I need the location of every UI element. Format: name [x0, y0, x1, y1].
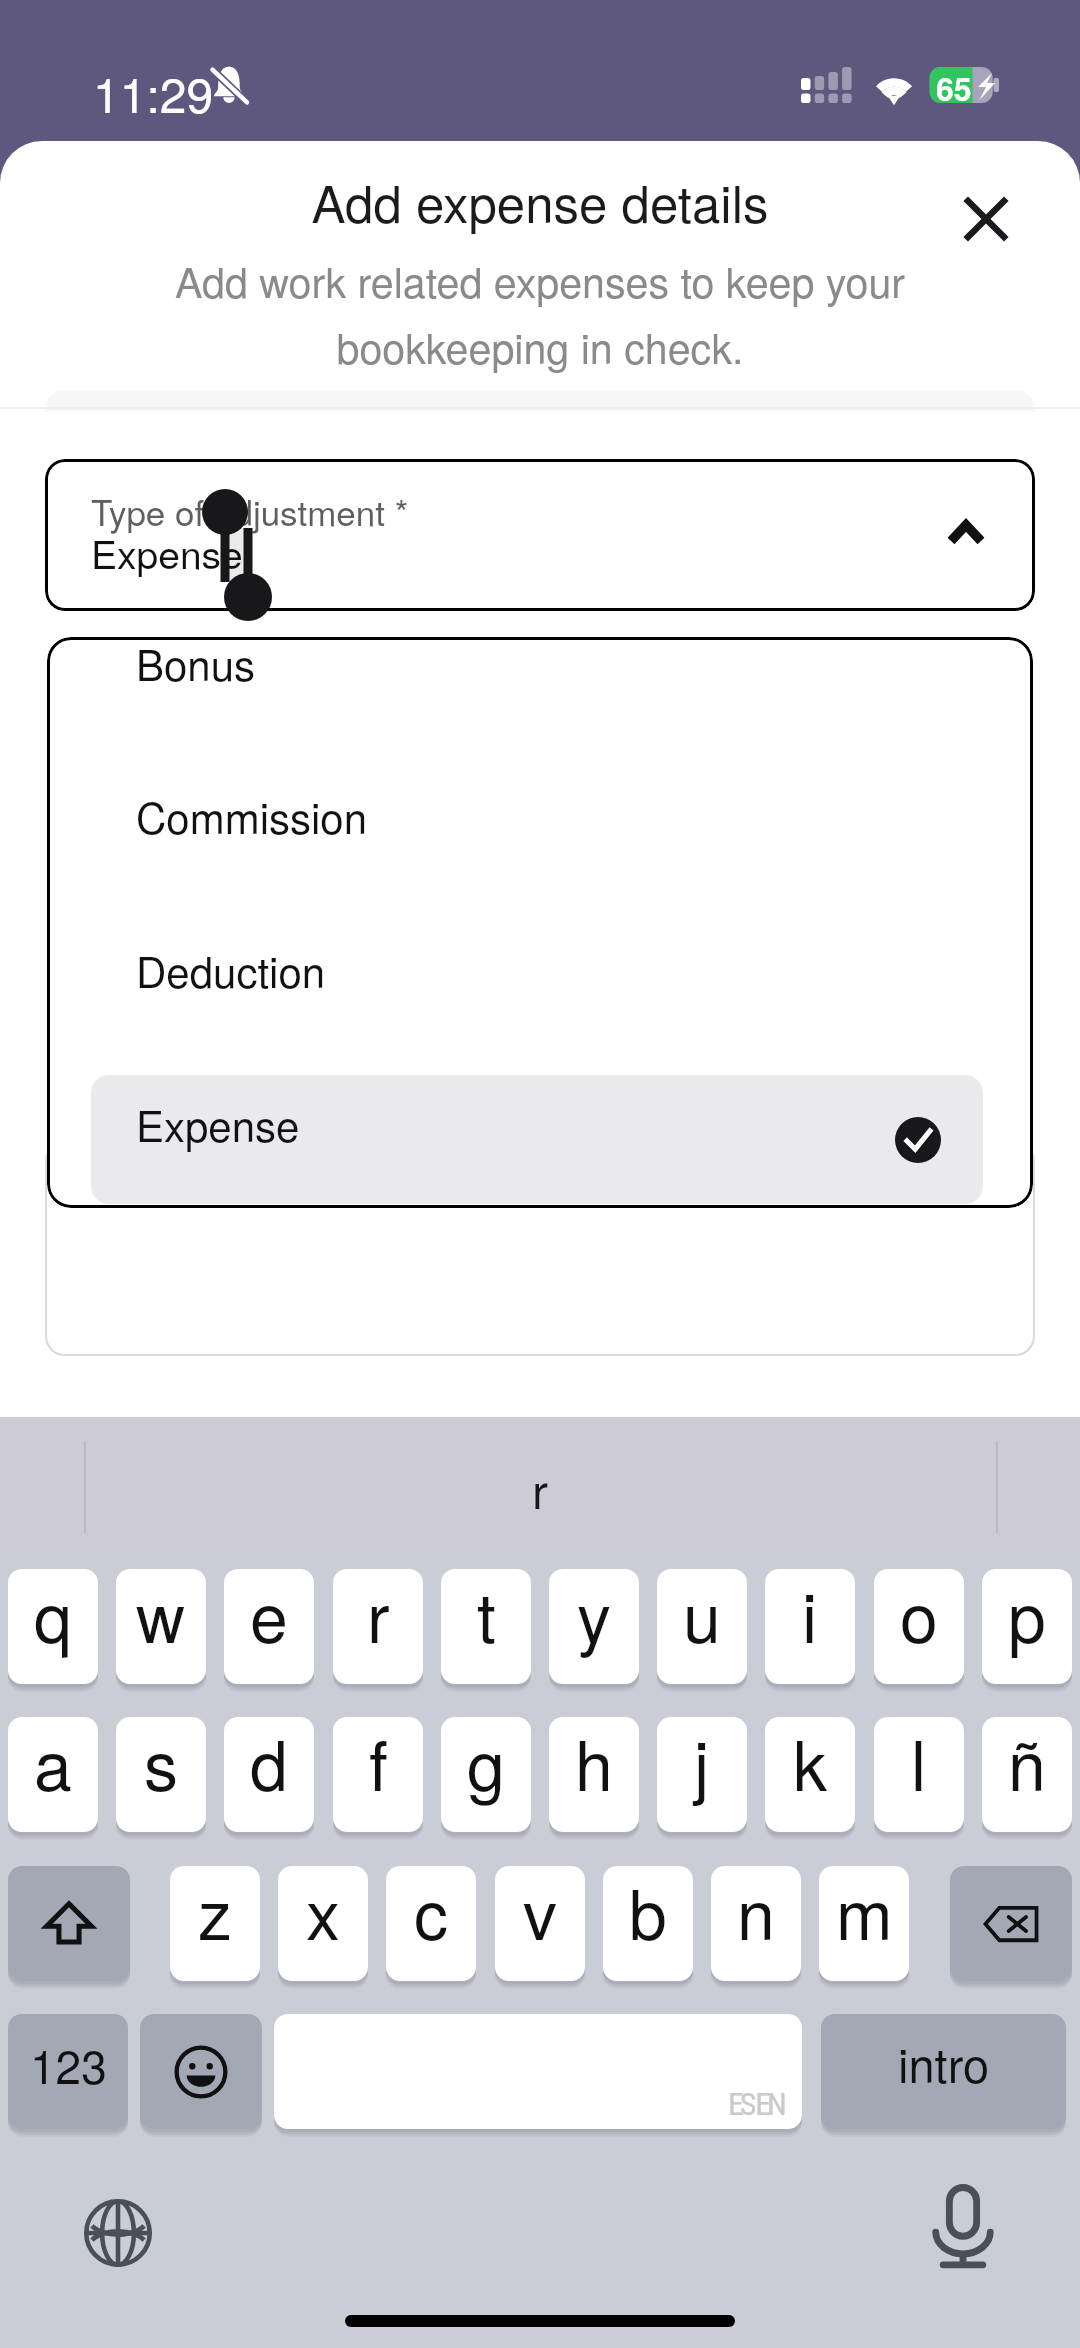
- staticText: ñ: [1008, 1717, 1046, 1810]
- button[interactable]: Shift: [8, 1866, 130, 1981]
- staticText: g: [467, 1717, 505, 1810]
- button[interactable]: r: [333, 1569, 423, 1684]
- staticText: 65: [936, 65, 972, 111]
- staticText: r: [0, 1454, 1080, 1523]
- staticText: y: [577, 1569, 612, 1662]
- button[interactable]: d: [224, 1717, 314, 1832]
- staticText: q: [34, 1569, 72, 1662]
- button[interactable]: g: [441, 1717, 531, 1832]
- staticText: Type of adjustment *: [91, 486, 409, 536]
- button[interactable]: v: [495, 1866, 585, 1981]
- button[interactable]: Expense: [47, 1075, 1033, 1204]
- button[interactable]: w: [116, 1569, 206, 1684]
- staticText: l: [911, 1717, 927, 1810]
- staticText: Expense: [136, 1094, 300, 1154]
- staticText: m: [836, 1866, 893, 1959]
- staticText: x: [306, 1866, 341, 1959]
- staticText: 123: [30, 2031, 107, 2097]
- button[interactable]: Type of adjustment *: [45, 459, 1035, 611]
- staticText: Deduction: [136, 940, 326, 1000]
- button[interactable]: p: [982, 1569, 1072, 1684]
- button[interactable]: Dictation: [915, 2179, 1011, 2275]
- button[interactable]: Commission: [47, 767, 1033, 896]
- staticText: d: [250, 1717, 288, 1810]
- staticText: ES EN: [728, 2085, 783, 2123]
- button[interactable]: x: [278, 1866, 368, 1981]
- staticText: Add expense details: [0, 164, 1080, 237]
- staticText: intro: [898, 2029, 990, 2096]
- staticText: v: [523, 1866, 558, 1959]
- button[interactable]: b: [603, 1866, 693, 1981]
- staticText: Expense: [91, 524, 243, 580]
- button[interactable]: o: [874, 1569, 964, 1684]
- button[interactable]: c: [386, 1866, 476, 1981]
- button[interactable]: a: [8, 1717, 98, 1832]
- button[interactable]: k: [765, 1717, 855, 1832]
- button[interactable]: j: [657, 1717, 747, 1832]
- button[interactable]: Backspace: [950, 1866, 1072, 1981]
- button[interactable]: n: [711, 1866, 801, 1981]
- staticText: p: [1008, 1569, 1046, 1662]
- staticText: z: [198, 1866, 233, 1959]
- staticText: Add work related expenses to keep your b…: [60, 251, 1020, 376]
- staticText: f: [369, 1717, 388, 1810]
- staticText: a: [34, 1717, 72, 1810]
- button[interactable]: Space: [274, 2014, 802, 2129]
- button[interactable]: Emoji: [140, 2014, 262, 2129]
- staticText: k: [793, 1717, 828, 1810]
- button[interactable]: t: [441, 1569, 531, 1684]
- staticText: o: [900, 1569, 938, 1662]
- staticText: s: [144, 1717, 179, 1810]
- staticText: u: [683, 1569, 721, 1662]
- button[interactable]: ñ: [982, 1717, 1072, 1832]
- staticText: b: [629, 1866, 667, 1959]
- button[interactable]: z: [170, 1866, 260, 1981]
- button[interactable]: i: [765, 1569, 855, 1684]
- button[interactable]: Bonus: [47, 637, 1033, 743]
- staticText: j: [694, 1717, 710, 1810]
- button[interactable]: s: [116, 1717, 206, 1832]
- button[interactable]: Close: [936, 169, 1036, 269]
- button[interactable]: Change language: [70, 2185, 166, 2281]
- button[interactable]: 123: [8, 2014, 128, 2129]
- button[interactable]: intro: [821, 2014, 1066, 2129]
- staticText: e: [250, 1569, 288, 1662]
- staticText: Bonus: [136, 637, 256, 693]
- button[interactable]: q: [8, 1569, 98, 1684]
- staticText: i: [802, 1569, 818, 1662]
- staticText: w: [136, 1569, 186, 1662]
- button[interactable]: l: [874, 1717, 964, 1832]
- staticText: t: [477, 1569, 496, 1662]
- button[interactable]: h: [549, 1717, 639, 1832]
- button[interactable]: m: [819, 1866, 909, 1981]
- staticText: c: [414, 1866, 449, 1959]
- button[interactable]: u: [657, 1569, 747, 1684]
- staticText: n: [737, 1866, 775, 1959]
- staticText: r: [367, 1569, 390, 1662]
- button[interactable]: e: [224, 1569, 314, 1684]
- staticText: 11:29: [93, 58, 214, 127]
- button[interactable]: y: [549, 1569, 639, 1684]
- staticText: Commission: [136, 786, 368, 846]
- button[interactable]: Deduction: [47, 921, 1033, 1050]
- button[interactable]: f: [333, 1717, 423, 1832]
- staticText: h: [575, 1717, 613, 1810]
